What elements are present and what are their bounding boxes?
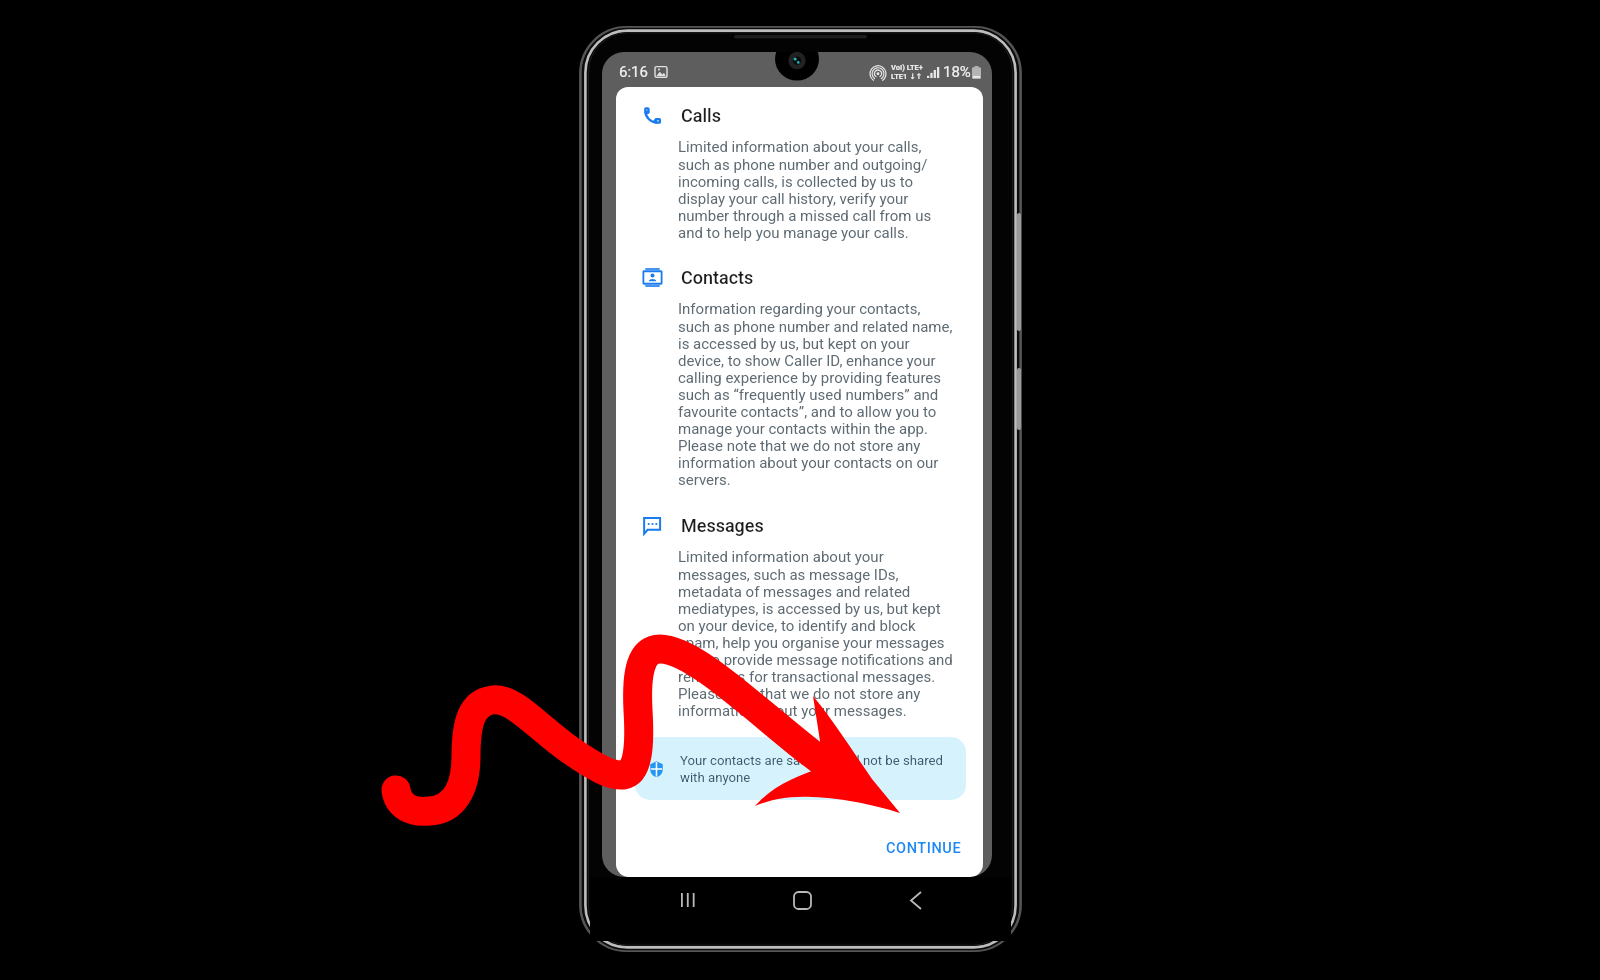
staticText: Information regarding your contacts, suc…	[678, 300, 953, 488]
staticText: VoI) LTE+	[891, 63, 923, 72]
staticText: Limited information about your calls, su…	[678, 138, 932, 241]
staticText: LTE1 ↓↑	[891, 72, 922, 81]
button[interactable]: Home	[774, 877, 830, 923]
staticText: Your contacts are safe and will not be s…	[680, 753, 944, 785]
button[interactable]: CONTINUE	[878, 833, 970, 864]
staticText: Messages	[681, 515, 764, 536]
staticText: Limited information about your messages,…	[678, 548, 953, 719]
staticText: 18%	[943, 63, 971, 81]
staticText: 6:16	[619, 63, 648, 81]
staticText: Calls	[681, 105, 721, 126]
button[interactable]: Back	[888, 877, 944, 923]
button[interactable]: Recent apps	[660, 877, 716, 923]
staticText: Contacts	[681, 267, 754, 288]
staticText: CONTINUE	[886, 840, 962, 857]
